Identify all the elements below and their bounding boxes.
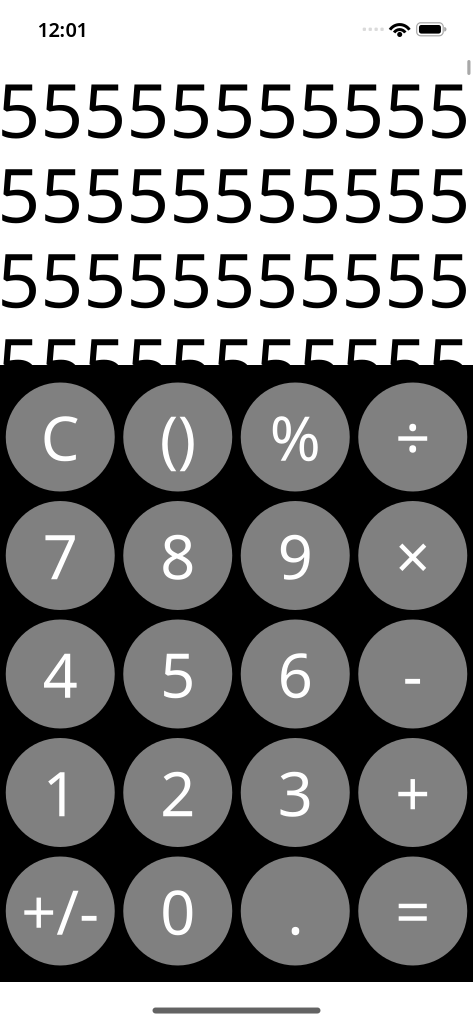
staticText: 1 [43, 752, 78, 833]
staticText: × [395, 515, 430, 596]
button[interactable]: + [358, 738, 467, 847]
staticText: . [287, 870, 303, 952]
staticText: 2 [160, 752, 195, 833]
button[interactable]: 8 [123, 501, 232, 610]
button[interactable]: C [6, 382, 115, 491]
staticText: 5 [160, 633, 195, 715]
staticText: ÷ [395, 396, 430, 478]
button[interactable]: = [358, 856, 467, 965]
button[interactable]: . [241, 856, 350, 965]
staticText: 6 [278, 633, 313, 715]
button[interactable]: 2 [123, 738, 232, 847]
button[interactable]: 1 [6, 738, 115, 847]
staticText: 4 [43, 633, 78, 715]
staticText: 12:01 [37, 16, 87, 43]
button[interactable]: % [241, 382, 350, 491]
button[interactable]: ÷ [358, 382, 467, 491]
staticText: 9 [278, 515, 313, 596]
staticText: +/- [21, 870, 99, 952]
button[interactable]: () [123, 382, 232, 491]
staticText: - [403, 633, 423, 715]
staticText: 0 [160, 870, 195, 952]
button[interactable]: 3 [241, 738, 350, 847]
staticText: + [395, 752, 430, 833]
staticText: () [160, 396, 196, 478]
button[interactable]: +/- [6, 856, 115, 965]
staticText: = [395, 870, 430, 952]
button[interactable]: × [358, 501, 467, 610]
staticText: 5555555555555555555555555555555555555555… [0, 66, 470, 491]
staticText: 7 [43, 515, 78, 596]
staticText: 8 [160, 515, 195, 596]
button[interactable]: 5 [123, 619, 232, 728]
button[interactable]: 7 [6, 501, 115, 610]
staticText: 3 [278, 752, 313, 833]
button[interactable]: - [358, 619, 467, 728]
button[interactable]: 0 [123, 856, 232, 965]
button[interactable]: 4 [6, 619, 115, 728]
button[interactable]: 6 [241, 619, 350, 728]
button[interactable]: 9 [241, 501, 350, 610]
staticText: % [270, 396, 321, 478]
staticText: C [41, 396, 80, 478]
